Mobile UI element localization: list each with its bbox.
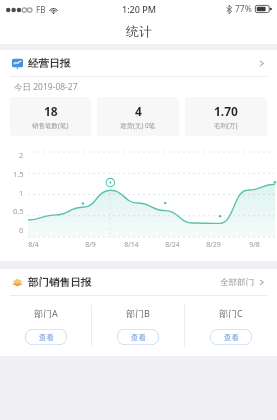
button[interactable]: 18 [10, 97, 91, 136]
staticText: 18 [44, 103, 58, 119]
staticText: 1:20 PM [122, 3, 156, 15]
staticText: 8/9 [85, 240, 96, 250]
staticText: 查看 [39, 333, 54, 342]
staticText: 0.5 [13, 206, 24, 216]
staticText: 1.70 [214, 103, 238, 119]
staticText: 查看 [224, 333, 239, 342]
staticText: 9/8 [249, 240, 260, 250]
staticText: 查看 [131, 333, 146, 342]
staticText: 8/14 [124, 240, 139, 250]
button[interactable]: 查看 [117, 329, 159, 345]
staticText: 2 [19, 150, 24, 160]
staticText: 1 [19, 188, 24, 198]
staticText: 经营日报 [28, 57, 70, 70]
button[interactable]: 4 [97, 97, 179, 136]
button[interactable]: 经营日报 [0, 50, 277, 76]
staticText: 部门A [34, 307, 58, 319]
button[interactable]: 1.70 [185, 97, 267, 136]
staticText: 1.5 [13, 169, 24, 179]
staticText: 部门C [219, 307, 243, 319]
staticText: 0 [19, 225, 24, 235]
button[interactable]: 部门销售日报 [0, 269, 277, 295]
button[interactable]: 查看 [210, 329, 252, 345]
staticText: 全部部门 [220, 277, 254, 288]
staticText: 77% [235, 3, 252, 15]
staticText: 退货(元) 0笔 [120, 121, 156, 130]
staticText: 销售笔数(笔) [32, 121, 69, 130]
staticText: 毛利(万) [214, 121, 238, 130]
staticText: 8/4 [28, 240, 39, 250]
staticText: 8/29 [206, 240, 221, 250]
staticText: 4 [135, 103, 142, 119]
staticText: 8/24 [165, 240, 180, 250]
staticText: 统计 [126, 23, 152, 39]
staticText: 部门销售日报 [28, 276, 91, 289]
button[interactable]: 查看 [25, 329, 67, 345]
staticText: 部门B [126, 307, 150, 319]
staticText: 今日 2019-08-27 [14, 81, 78, 93]
staticText: FB [36, 4, 46, 15]
